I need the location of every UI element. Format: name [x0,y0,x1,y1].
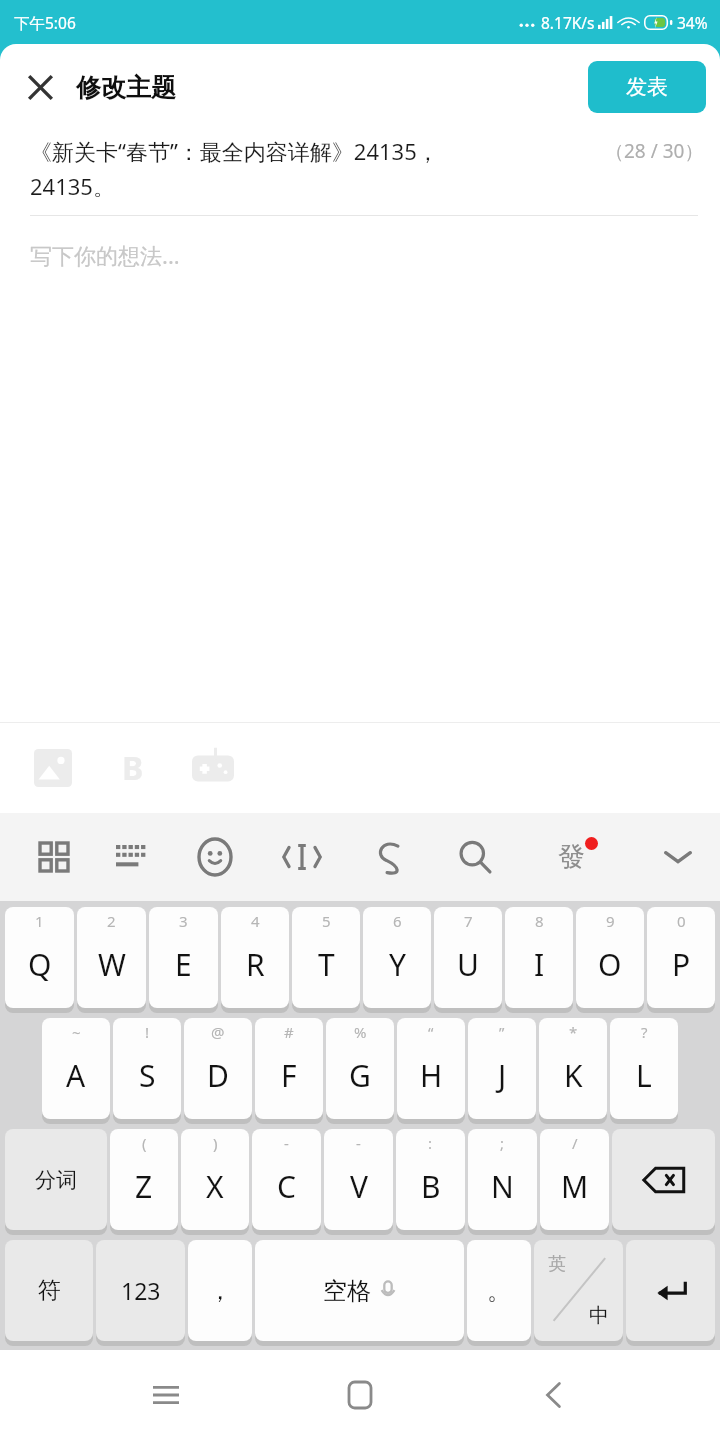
staticText: / [572,1133,578,1153]
staticText: T [318,944,335,985]
staticText: （28 / 30） [605,138,704,164]
staticText: V [350,1166,368,1207]
staticText: 中 [589,1303,609,1328]
button[interactable]: ” [468,1018,536,1119]
button[interactable]: 。 [467,1240,531,1341]
staticText: P [672,944,691,985]
staticText: 分词 [35,1167,77,1193]
button[interactable]: 123 [96,1240,185,1341]
button[interactable]: ; [468,1129,537,1230]
button[interactable]: Clipboard [357,813,421,901]
staticText: X [206,1166,224,1207]
staticText: G [349,1055,371,1096]
button[interactable]: Insert image [22,737,84,799]
button[interactable]: % [326,1018,394,1119]
button[interactable]: 发表 [588,61,706,113]
button[interactable]: 7 [434,907,502,1008]
staticText: D [207,1055,229,1096]
staticText: B [122,746,144,790]
staticText: 写下你的想法... [30,240,180,270]
staticText: H [420,1055,443,1096]
staticText: N [491,1166,514,1207]
button[interactable]: ! [113,1018,181,1119]
button[interactable]: Emoji [183,813,247,901]
button[interactable]: 4 [221,907,289,1008]
staticText: 123 [121,1275,161,1306]
button[interactable]: Keyboard modes [22,813,86,901]
button[interactable]: 符 [5,1240,93,1341]
button[interactable]: Enter [626,1240,715,1341]
button[interactable]: 3 [149,907,218,1008]
staticText: * [569,1022,578,1042]
staticText: U [457,944,479,985]
button[interactable]: “ [397,1018,465,1119]
button[interactable]: 写下你的想法... [30,240,720,270]
staticText: 5 [322,911,331,931]
button[interactable]: 分词 [5,1129,107,1230]
button[interactable]: B [102,737,164,799]
staticText: 34% [677,12,708,33]
staticText: ~ [72,1022,81,1042]
staticText: 英 [548,1253,566,1276]
staticText: # [284,1022,294,1042]
button[interactable]: 9 [576,907,644,1008]
button[interactable]: @ [184,1018,252,1119]
button[interactable]: # [255,1018,323,1119]
button[interactable]: 2 [77,907,146,1008]
button[interactable]: ~ [42,1018,110,1119]
staticText: O [598,944,622,985]
staticText: ” [499,1022,505,1042]
staticText: I [534,944,545,985]
staticText: R [246,944,265,985]
button[interactable]: 1 [5,907,74,1008]
staticText: 8 [535,911,544,931]
button[interactable]: 0 [647,907,715,1008]
staticText: % [354,1022,367,1042]
staticText: 發 [558,840,585,874]
button[interactable]: Hide keyboard [646,813,710,901]
button[interactable]: Move cursor [270,813,334,901]
button[interactable]: 5 [292,907,360,1008]
button[interactable]: * [539,1018,607,1119]
staticText: 1 [35,911,44,931]
button[interactable]: ， [188,1240,252,1341]
button[interactable]: Close [16,63,64,111]
button[interactable]: Recent apps [101,1350,231,1440]
staticText: E [175,944,192,985]
staticText: 8.17K/s [541,12,595,33]
staticText: 空格 [323,1276,371,1306]
button[interactable]: - [252,1129,321,1230]
staticText: 发表 [626,74,668,100]
button[interactable]: Back [489,1350,619,1440]
button[interactable]: Switch language [534,1240,623,1341]
button[interactable]: ) [181,1129,249,1230]
button[interactable]: Home [295,1350,425,1440]
button[interactable]: Keyboard layout [100,813,164,901]
staticText: 9 [606,911,615,931]
staticText: - [284,1133,289,1153]
button[interactable]: Game [182,737,244,799]
staticText: K [564,1055,583,1096]
staticText: 0 [677,911,686,931]
button[interactable]: 發 [533,813,609,901]
button[interactable]: Backspace [612,1129,715,1230]
button[interactable]: Search [443,813,507,901]
staticText: 7 [464,911,473,931]
staticText: M [561,1166,589,1207]
button[interactable]: 6 [363,907,431,1008]
button[interactable]: 8 [505,907,573,1008]
staticText: 《新关卡“春节”：最全内容详解》24135， 24135。 [30,136,556,201]
button[interactable]: ? [610,1018,678,1119]
button[interactable]: - [324,1129,393,1230]
button[interactable]: 空格 [255,1240,464,1341]
staticText: 3 [179,911,188,931]
staticText: Z [135,1166,153,1207]
staticText: S [139,1055,156,1096]
button[interactable]: / [540,1129,609,1230]
staticText: 。 [487,1276,511,1306]
staticText: L [636,1055,652,1096]
button[interactable]: ( [110,1129,178,1230]
staticText: - [356,1133,361,1153]
button[interactable]: : [396,1129,465,1230]
staticText: B [421,1166,441,1207]
